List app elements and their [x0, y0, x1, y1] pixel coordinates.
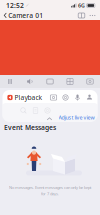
button[interactable]: Camera 01 [0, 11, 46, 20]
button[interactable]: Collapse tools [42, 116, 56, 122]
button[interactable]: Events [29, 105, 41, 116]
button[interactable]: People [83, 92, 95, 103]
button[interactable]: Snapshot [47, 92, 59, 103]
staticText: 6G [78, 2, 85, 9]
button[interactable]: More settings [41, 105, 53, 116]
button[interactable]: Talk [71, 92, 83, 103]
staticText: 12:52 [6, 1, 24, 10]
button[interactable]: Multi view [60, 75, 80, 88]
staticText: for 7 days. [41, 191, 59, 196]
button[interactable]: Playback [4, 92, 46, 102]
staticText: No messages. Event messages can only be … [9, 185, 91, 190]
button[interactable]: Image settings [59, 92, 71, 103]
button[interactable]: More options [87, 11, 98, 20]
button[interactable]: Pause [0, 75, 20, 88]
button[interactable]: Snapshot [80, 75, 100, 88]
staticText: Adjust live view [58, 114, 94, 121]
button[interactable]: Zoom [17, 105, 29, 116]
button[interactable]: Sound [20, 75, 40, 88]
staticText: Event Messages [4, 123, 56, 132]
staticText: Camera 01 [8, 11, 43, 20]
staticText: Playback [15, 93, 43, 102]
button[interactable]: Split view [76, 11, 87, 20]
button[interactable]: Adjust live view [58, 114, 97, 121]
button[interactable]: Resolution [40, 75, 60, 88]
